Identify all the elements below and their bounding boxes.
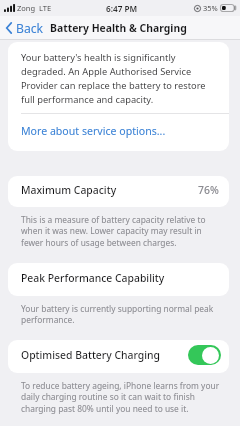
button[interactable]: Maximum Capacity — [8, 176, 229, 207]
staticText: This is a measure of battery capacity re… — [21, 214, 218, 248]
staticText: 35% — [203, 3, 218, 13]
staticText: Battery Health & Charging — [50, 21, 187, 35]
staticText: More about service options... — [21, 124, 166, 138]
staticText: To reduce battery ageing, iPhone learns … — [21, 380, 222, 414]
button[interactable]: More about service options... — [8, 114, 229, 151]
staticText: Your battery is currently supporting nor… — [21, 303, 218, 325]
staticText: Your battery's health is significantly d… — [21, 51, 216, 106]
staticText: Maximum Capacity — [21, 183, 117, 197]
staticText: LTE — [39, 3, 52, 13]
staticText: Optimised Battery Charging — [21, 348, 160, 362]
button[interactable]: Peak Performance Capability — [8, 263, 229, 296]
staticText: Back — [16, 20, 44, 36]
staticText: 76% — [198, 183, 219, 197]
button[interactable]: Optimised Battery Charging toggle — [188, 345, 221, 365]
staticText: 6:47 PM — [106, 3, 138, 14]
button[interactable]: Back — [0, 16, 48, 40]
staticText: Peak Performance Capability — [21, 271, 165, 285]
staticText: Zong — [17, 3, 36, 13]
